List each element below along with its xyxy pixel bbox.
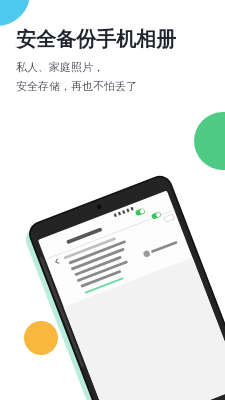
- button[interactable]: 安全备份手机相册 宣传页: [0, 0, 225, 400]
- staticText: 私人、家庭照片，: [16, 60, 104, 74]
- staticText: 安全存储，再也不怕丢了: [16, 79, 137, 93]
- staticText: 安全备份手机相册: [16, 27, 176, 52]
